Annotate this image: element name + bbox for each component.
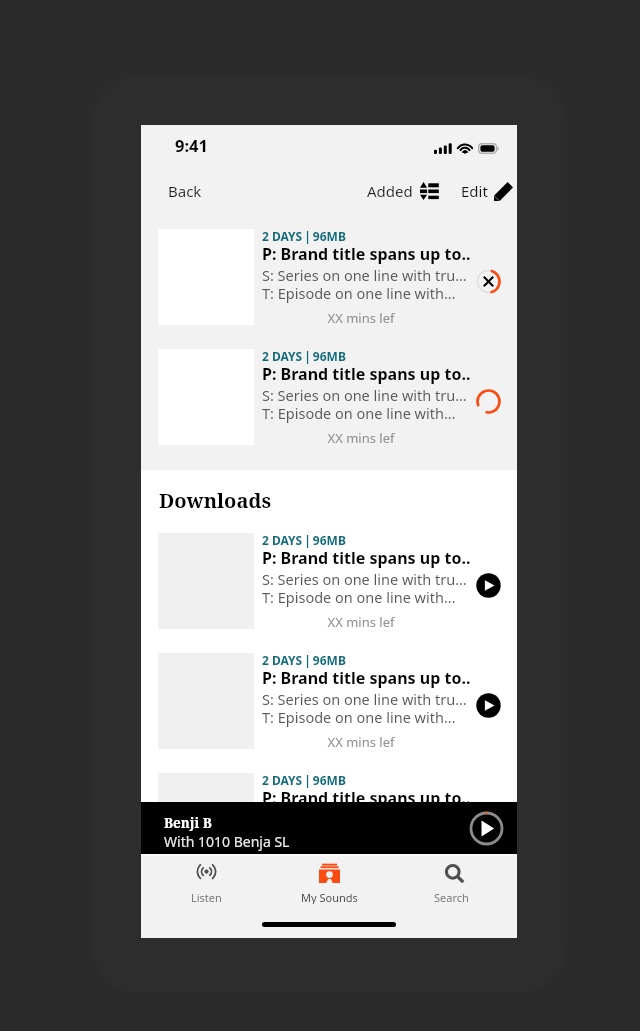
- staticText: XX mins lef: [262, 309, 460, 327]
- staticText: S: Series on one line with tru…: [262, 385, 480, 405]
- button[interactable]: 2 DAYS | 96MB: [141, 649, 517, 769]
- staticText: XX mins lef: [262, 853, 460, 871]
- button[interactable]: Added: [361, 169, 445, 213]
- staticText: S: Series on one line with tru…: [262, 265, 480, 285]
- staticText: Search: [434, 890, 469, 904]
- staticText: My Sounds: [301, 890, 358, 904]
- staticText: 9:41: [175, 134, 208, 156]
- button[interactable]: 2 DAYS | 96MB: [141, 345, 517, 465]
- button[interactable]: Back: [154, 169, 216, 213]
- button[interactable]: Play: [474, 811, 503, 840]
- staticText: P: Brand title spans up to..: [262, 243, 480, 265]
- staticText: T: Episode on one line with…: [262, 707, 480, 727]
- staticText: S: Series on one line with tru…: [262, 569, 480, 589]
- staticText: S: Series on one line with tru…: [262, 809, 480, 829]
- button[interactable]: Play: [474, 571, 503, 600]
- staticText: P: Brand title spans up to..: [262, 787, 480, 809]
- staticText: Downloads: [159, 487, 271, 514]
- staticText: 2 DAYS | 96MB: [262, 348, 346, 364]
- staticText: Back: [168, 181, 202, 201]
- staticText: T: Episode on one line with…: [262, 587, 480, 607]
- button[interactable]: Play: [474, 691, 503, 720]
- staticText: With 1010 Benja SL: [164, 832, 290, 851]
- staticText: Listen: [191, 890, 222, 904]
- staticText: P: Brand title spans up to..: [262, 667, 480, 689]
- button[interactable]: Listen: [150, 856, 263, 904]
- staticText: Benji B: [164, 814, 212, 832]
- button[interactable]: 2 DAYS | 96MB: [141, 769, 517, 889]
- staticText: Added: [367, 181, 413, 201]
- staticText: P: Brand title spans up to..: [262, 547, 480, 569]
- staticText: 2 DAYS | 96MB: [262, 772, 346, 788]
- button[interactable]: Cancel download: [474, 267, 503, 296]
- button[interactable]: Edit: [445, 169, 515, 213]
- button[interactable]: My Sounds: [273, 856, 386, 904]
- staticText: P: Brand title spans up to..: [262, 363, 480, 385]
- staticText: 2 DAYS | 96MB: [262, 652, 346, 668]
- button[interactable]: Benji B: [141, 802, 517, 854]
- staticText: T: Episode on one line with…: [262, 403, 480, 423]
- staticText: T: Episode on one line with…: [262, 827, 480, 847]
- button[interactable]: Downloading: [474, 387, 503, 416]
- button[interactable]: 2 DAYS | 96MB: [141, 225, 517, 345]
- staticText: T: Episode on one line with…: [262, 283, 480, 303]
- staticText: 2 DAYS | 96MB: [262, 228, 346, 244]
- button[interactable]: Search: [395, 856, 508, 904]
- staticText: XX mins lef: [262, 733, 460, 751]
- staticText: S: Series on one line with tru…: [262, 689, 480, 709]
- staticText: Edit: [461, 181, 488, 201]
- staticText: 2 DAYS | 96MB: [262, 532, 346, 548]
- staticText: XX mins lef: [262, 429, 460, 447]
- button[interactable]: 2 DAYS | 96MB: [141, 529, 517, 649]
- button[interactable]: Play: [469, 811, 504, 846]
- staticText: XX mins lef: [262, 613, 460, 631]
